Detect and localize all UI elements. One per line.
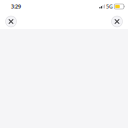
button[interactable]: Close: [111, 16, 122, 27]
staticText: 5G: [106, 3, 113, 10]
button[interactable]: Close: [5, 16, 16, 27]
staticText: 3:29: [11, 3, 21, 10]
